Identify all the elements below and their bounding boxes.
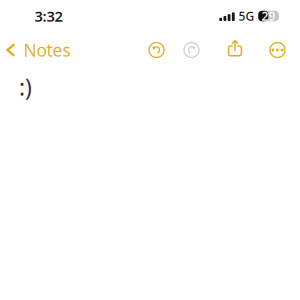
button[interactable]: Redo <box>175 34 207 66</box>
button[interactable]: Notes <box>0 34 80 66</box>
staticText: 5G <box>238 8 254 24</box>
button[interactable]: :) <box>0 66 300 300</box>
button[interactable]: More <box>261 34 293 66</box>
staticText: 29 <box>261 8 275 24</box>
staticText: Notes <box>23 38 70 61</box>
staticText: 3:32 <box>34 6 62 26</box>
staticText: :) <box>19 72 32 102</box>
button[interactable]: Share <box>219 32 251 64</box>
button[interactable]: Undo <box>140 34 172 66</box>
